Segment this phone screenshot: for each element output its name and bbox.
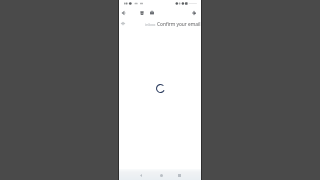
staticText: Confirm your email — [157, 21, 201, 28]
button[interactable]: inbox — [119, 18, 201, 29]
button[interactable]: More options — [190, 7, 198, 18]
button[interactable]: Home — [156, 170, 166, 180]
button[interactable]: Delete — [138, 7, 146, 18]
button[interactable]: Back — [119, 7, 127, 18]
button[interactable]: Back — [136, 170, 146, 180]
staticText: inbox — [145, 22, 156, 27]
button[interactable]: Star — [119, 18, 127, 29]
button[interactable]: Recent apps — [174, 170, 184, 180]
button[interactable]: Mark as unread — [148, 7, 156, 18]
